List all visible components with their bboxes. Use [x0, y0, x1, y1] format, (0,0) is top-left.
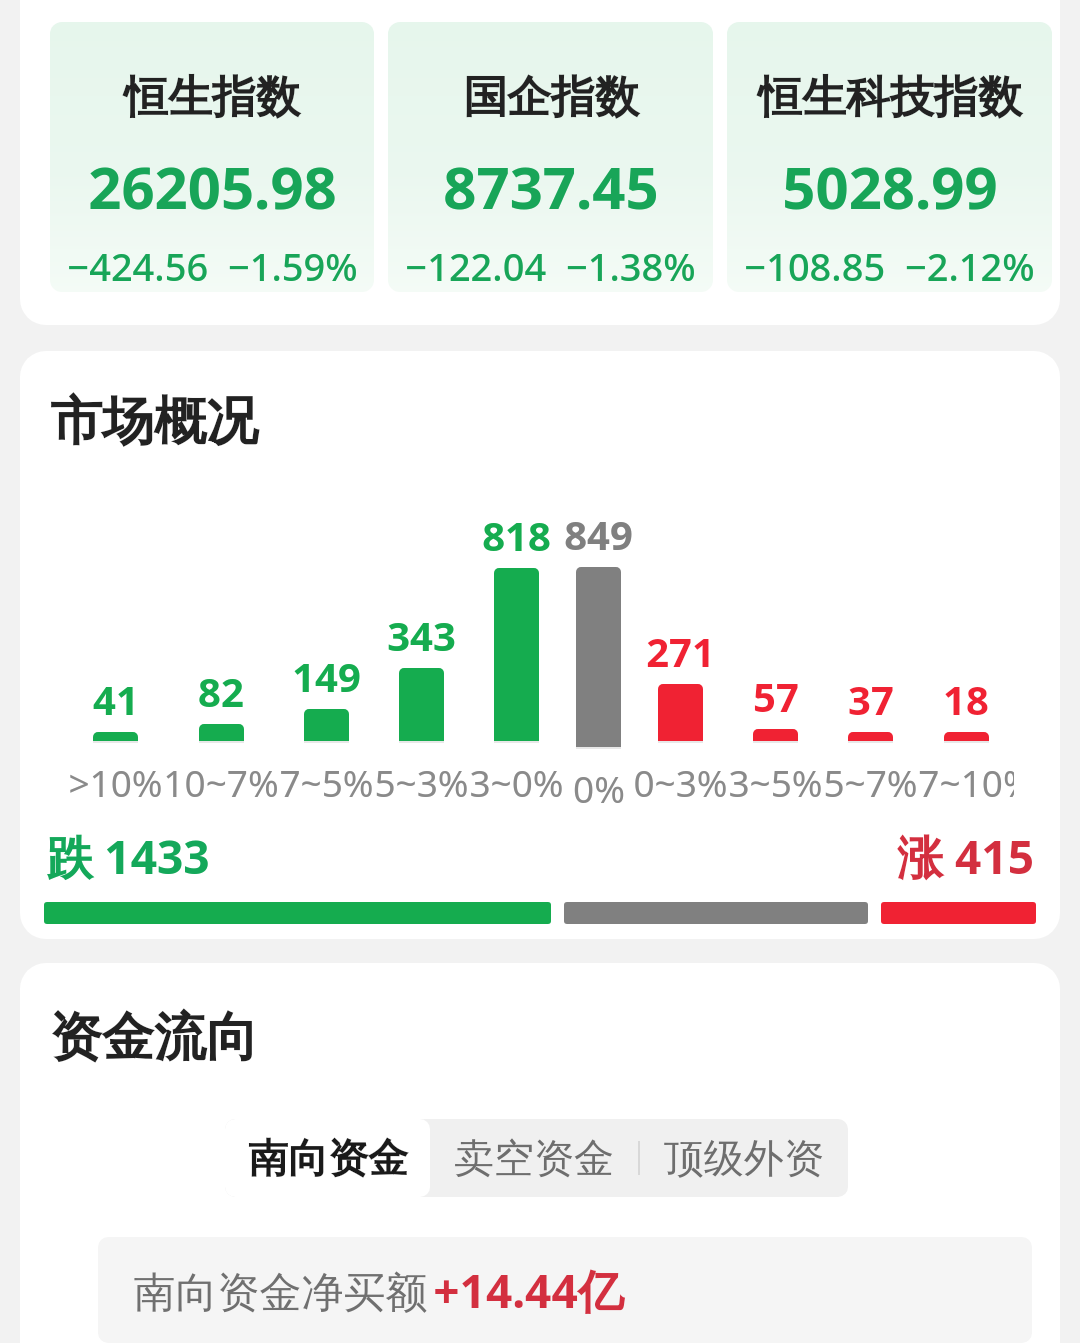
- staticText: 7~5%: [279, 757, 374, 807]
- staticText: 8737.45: [443, 147, 659, 226]
- staticText: 5028.99: [782, 147, 998, 226]
- staticText: +14.44亿: [433, 1259, 624, 1322]
- staticText: 卖空资金: [454, 1133, 614, 1183]
- staticText: 271: [646, 624, 715, 678]
- staticText: 37: [848, 672, 894, 726]
- staticText: −122.04 −1.38%: [405, 240, 696, 292]
- staticText: 恒生科技指数: [758, 70, 1022, 125]
- staticText: 南向资金净买额: [128, 1262, 433, 1319]
- staticText: 南向资金: [248, 1133, 408, 1183]
- button[interactable]: 57: [728, 669, 823, 807]
- button[interactable]: 南向资金净买额: [98, 1237, 1032, 1343]
- staticText: 5~7%: [823, 757, 918, 807]
- staticText: 资金流向: [50, 1005, 258, 1071]
- button[interactable]: 41: [68, 672, 163, 807]
- button[interactable]: 149: [279, 649, 374, 807]
- button[interactable]: 37: [823, 672, 918, 807]
- staticText: 149: [292, 649, 361, 703]
- button[interactable]: 271: [633, 624, 728, 807]
- staticText: −108.85 −2.12%: [744, 240, 1035, 292]
- staticText: 818: [482, 508, 551, 562]
- button[interactable]: 南向资金: [225, 1119, 430, 1197]
- staticText: 3~0%: [469, 757, 564, 807]
- staticText: 0%: [573, 763, 625, 807]
- button[interactable]: 18: [918, 672, 1014, 807]
- staticText: 26205.98: [88, 147, 337, 226]
- staticText: 7~10%: [918, 757, 1014, 807]
- staticText: 41: [93, 672, 139, 726]
- button[interactable]: 卖空资金: [430, 1119, 638, 1197]
- staticText: 57: [753, 669, 799, 723]
- button[interactable]: 818: [469, 508, 564, 807]
- staticText: 跌 1433: [46, 825, 210, 888]
- staticText: 顶级外资: [664, 1133, 824, 1183]
- staticText: 0~3%: [633, 757, 728, 807]
- button[interactable]: 849: [564, 507, 633, 807]
- staticText: −424.56 −1.59%: [67, 240, 358, 292]
- staticText: 10~7%: [163, 757, 279, 807]
- staticText: 市场概况: [50, 389, 258, 455]
- staticText: >10%: [68, 757, 163, 807]
- staticText: 18: [943, 672, 989, 726]
- staticText: 国企指数: [463, 70, 639, 125]
- staticText: 82: [198, 664, 244, 718]
- button[interactable]: 顶级外资: [640, 1119, 848, 1197]
- button[interactable]: 343: [374, 608, 469, 807]
- button[interactable]: 82: [163, 664, 279, 807]
- staticText: 849: [564, 507, 633, 561]
- button[interactable]: 恒生指数: [50, 22, 374, 292]
- button[interactable]: 国企指数: [388, 22, 713, 292]
- staticText: 3~5%: [728, 757, 823, 807]
- staticText: 恒生指数: [124, 70, 300, 125]
- staticText: 343: [387, 608, 456, 662]
- staticText: 涨 415: [897, 825, 1034, 888]
- staticText: 5~3%: [374, 757, 469, 807]
- button[interactable]: 恒生科技指数: [727, 22, 1052, 292]
